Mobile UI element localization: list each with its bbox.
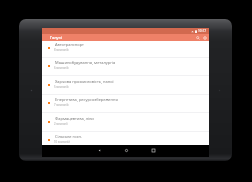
button[interactable]: Сільське госп. [42,132,209,145]
button[interactable]: Search [194,34,201,41]
staticText: Машинобудування, металургія [55,60,116,65]
staticText: 10:17 [198,29,207,33]
button[interactable]: Фармацевтика, ліки [42,114,209,132]
staticText: Енергетика, ресурсозбереження [55,97,118,102]
button[interactable]: Settings [201,34,208,41]
staticText: 7 компаній [54,103,69,107]
button[interactable]: Recent apps [147,146,159,155]
staticText: 6 компаній [54,66,69,70]
staticText: 10 компаній [54,140,70,144]
staticText: 5 компаній [54,85,69,89]
staticText: Сільське госп. [55,134,83,139]
button[interactable]: Back [93,146,105,155]
button[interactable]: Home [120,146,132,155]
staticText: Фармацевтика, ліки [55,116,94,121]
staticText: 2 компанії [54,122,68,126]
staticText: Автотранспорт [55,42,84,47]
button[interactable]: Машинобудування, металургія [42,58,209,76]
button[interactable]: Енергетика, ресурсозбереження [42,95,209,113]
button[interactable]: Харчова промисловість, напої [42,77,209,95]
staticText: 8 компаній [54,48,69,52]
staticText: Галузі [50,35,62,40]
staticText: Харчова промисловість, напої [55,79,114,84]
button[interactable]: Автотранспорт [42,41,209,58]
